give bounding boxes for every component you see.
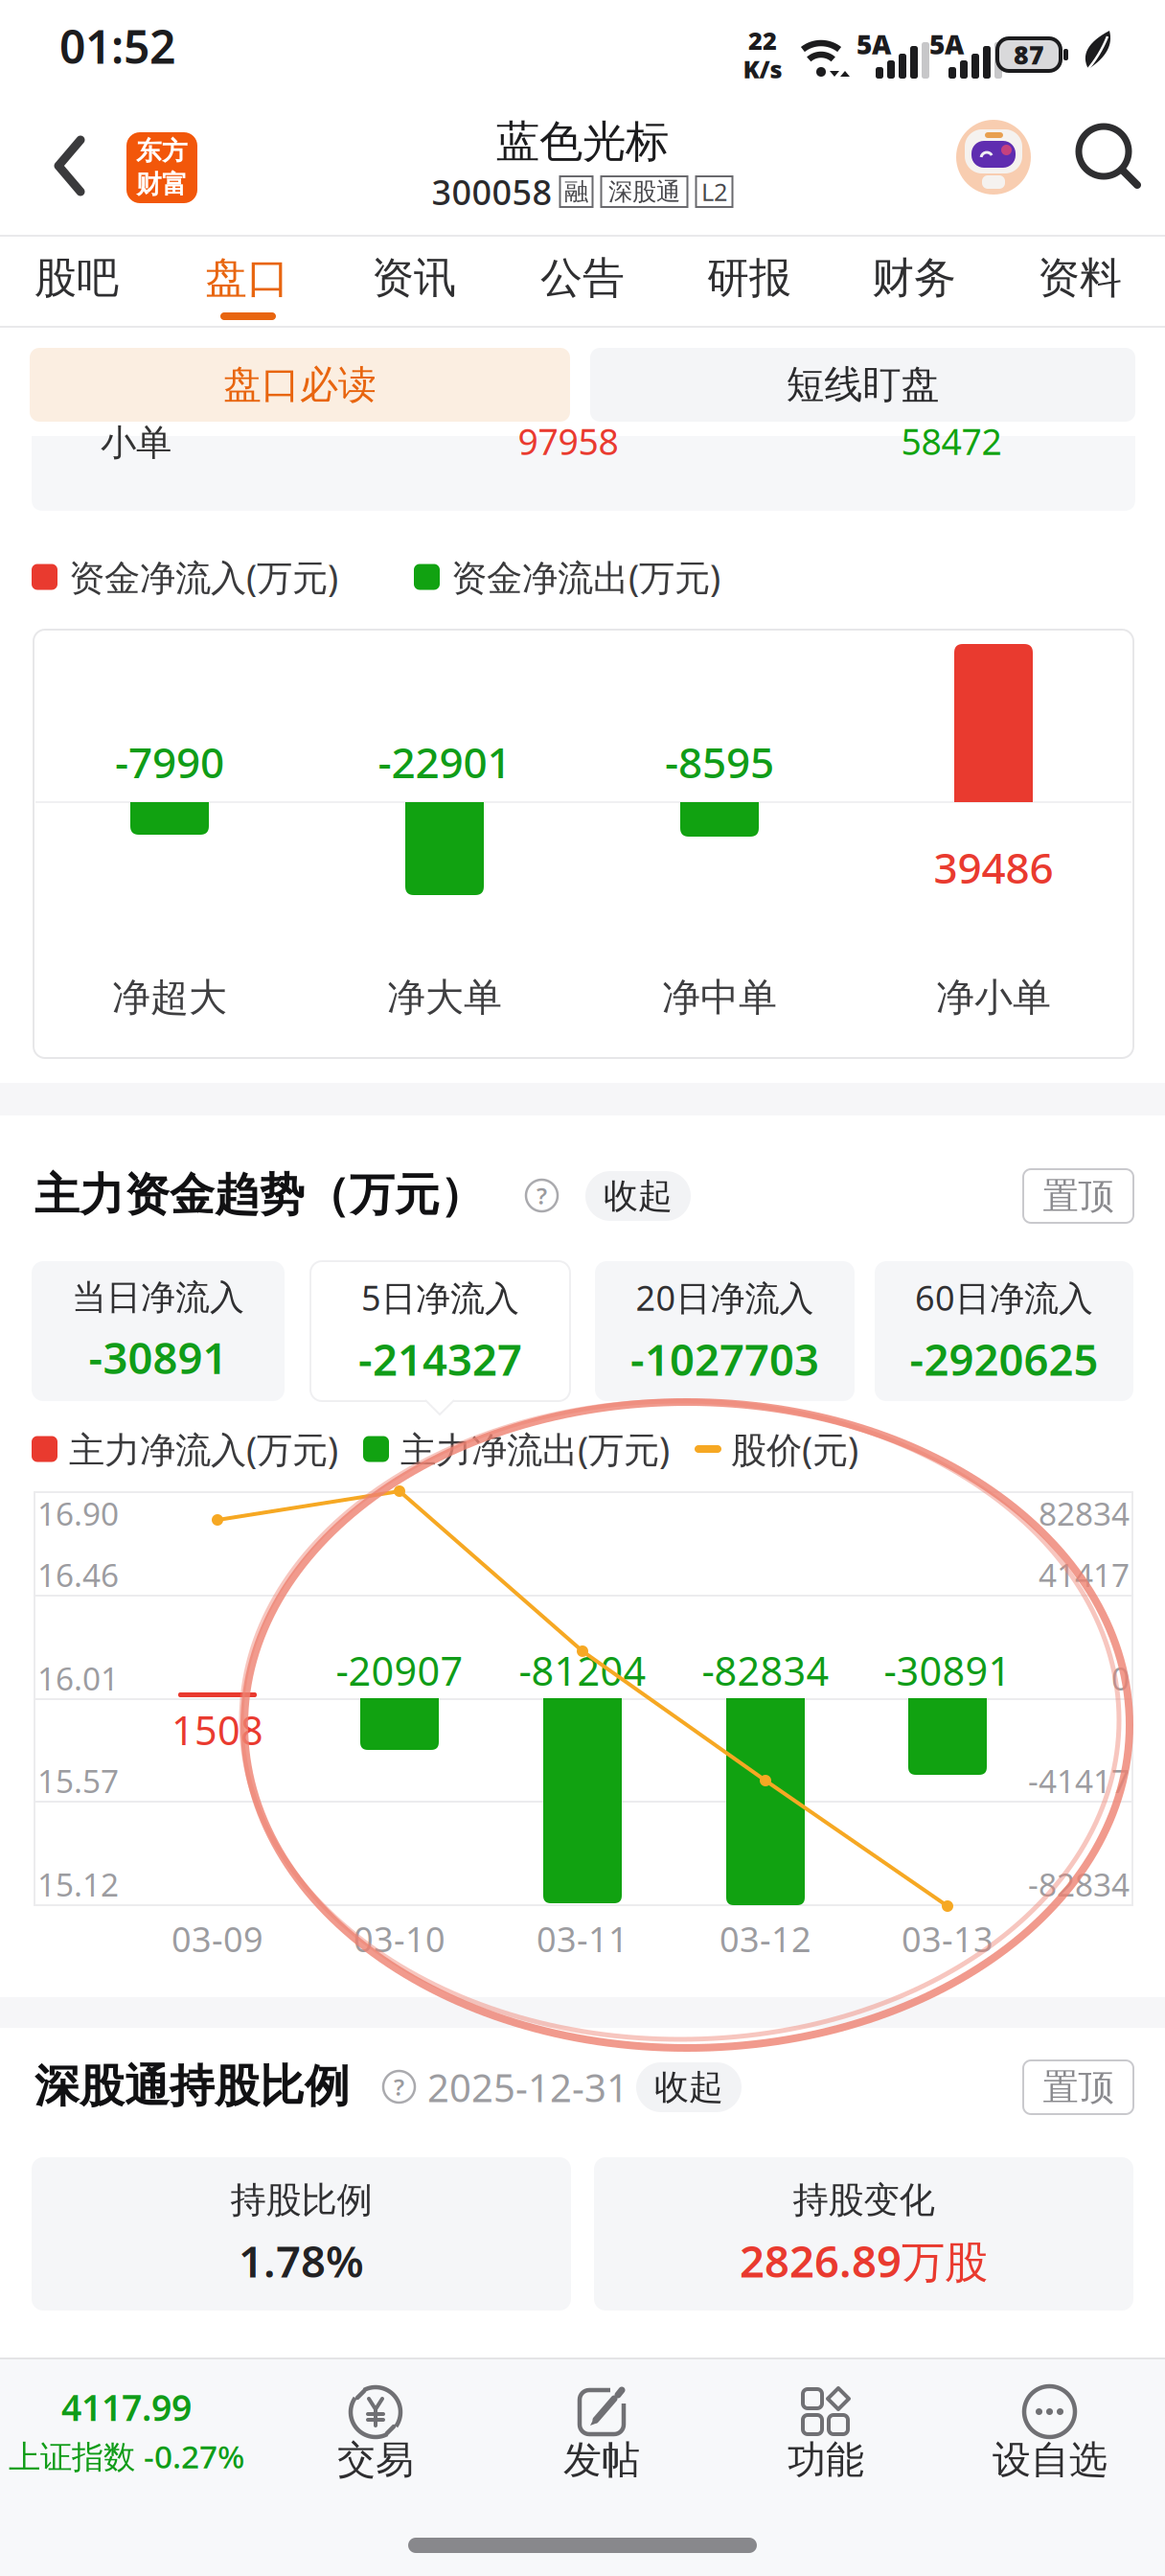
button[interactable]: 发帖 xyxy=(0,2357,1165,2576)
button[interactable]: 设自选 xyxy=(0,2357,1165,2576)
button[interactable]: 公告 xyxy=(0,235,1165,328)
staticText: -82834 xyxy=(702,1644,829,1697)
staticText: 净超大 xyxy=(112,974,227,1021)
staticText: 盘口必读 xyxy=(223,361,377,408)
staticText: 深股通持股比例 xyxy=(34,2059,350,2114)
button[interactable]: 持股比例 xyxy=(0,0,1165,2576)
staticText: 研报 xyxy=(707,252,791,304)
button[interactable]: 盘口必读 xyxy=(0,0,1165,2576)
staticText: 当日净流入 xyxy=(72,1276,244,1319)
button[interactable]: 盘口 xyxy=(0,235,1165,328)
button[interactable]: 财务 xyxy=(0,235,1165,328)
staticText: 股吧 xyxy=(34,252,119,304)
staticText: -7990 xyxy=(115,734,224,790)
staticText: 上证指数 -0.27% xyxy=(9,2435,244,2477)
staticText: -81204 xyxy=(519,1644,646,1697)
staticText: 东方 xyxy=(136,135,188,167)
staticText: 39486 xyxy=(934,839,1053,895)
staticText: 蓝色光标 xyxy=(496,115,669,169)
button[interactable]: 帮助 xyxy=(0,2058,1165,2114)
button[interactable]: Search xyxy=(0,105,1165,220)
staticText: 16.46 xyxy=(37,1553,119,1596)
staticText: 主力资金趋势（万元） xyxy=(34,1168,485,1222)
button[interactable]: 5日净流入 xyxy=(0,1261,1165,1416)
staticText: 置顶 xyxy=(1043,1174,1114,1218)
staticText: 收起 xyxy=(654,2066,723,2108)
staticText: 41417 xyxy=(1039,1553,1130,1596)
staticText: 功能 xyxy=(788,2436,864,2484)
staticText: 净大单 xyxy=(387,974,502,1021)
staticText: -2920625 xyxy=(910,1330,1098,1388)
staticText: 5A xyxy=(929,26,964,62)
button[interactable]: 收起 xyxy=(0,2058,1165,2114)
staticText: 22 xyxy=(748,24,777,57)
staticText: 5A xyxy=(857,26,891,62)
staticText: 5日净流入 xyxy=(361,1275,519,1320)
staticText: L2 xyxy=(701,176,727,208)
staticText: ? xyxy=(537,1180,547,1211)
staticText: K/s xyxy=(743,53,782,85)
staticText: 2826.89万股 xyxy=(740,2232,988,2289)
staticText: 资金净流入(万元) xyxy=(69,553,338,601)
staticText: 设自选 xyxy=(993,2436,1108,2484)
button[interactable]: 短线盯盘 xyxy=(0,0,1165,2576)
button[interactable]: 当日净流入 xyxy=(0,1261,1165,1416)
staticText: 16.90 xyxy=(37,1492,119,1534)
button[interactable]: 交易 xyxy=(0,2357,1165,2576)
staticText: 1508 xyxy=(171,1704,263,1756)
staticText: 发帖 xyxy=(563,2436,640,2484)
staticText: 持股比例 xyxy=(230,2178,372,2222)
staticText: -22901 xyxy=(378,734,511,790)
staticText: -82834 xyxy=(1028,1863,1130,1905)
button[interactable]: 功能 xyxy=(0,2357,1165,2576)
staticText: 小单 xyxy=(101,421,171,465)
staticText: 15.57 xyxy=(37,1759,119,1802)
staticText: 主力净流入(万元) xyxy=(69,1425,338,1473)
staticText: 15.12 xyxy=(37,1863,119,1905)
staticText: 收起 xyxy=(604,1175,673,1217)
staticText: 97958 xyxy=(518,417,618,465)
button[interactable]: 4117.99 xyxy=(0,2357,1165,2576)
button[interactable]: 资料 xyxy=(0,235,1165,328)
staticText: 财富 xyxy=(136,169,188,200)
staticText: -8595 xyxy=(665,734,774,790)
button[interactable]: Assistant xyxy=(0,105,1165,220)
staticText: 公告 xyxy=(540,252,625,304)
staticText: 融 xyxy=(564,177,588,207)
button[interactable]: 置顶 xyxy=(0,2058,1165,2114)
button[interactable]: Back xyxy=(0,105,1165,220)
staticText: -30891 xyxy=(884,1644,1011,1697)
staticText: 净中单 xyxy=(662,974,777,1021)
button[interactable]: 60日净流入 xyxy=(0,1261,1165,1416)
staticText: 58472 xyxy=(901,417,1002,465)
button[interactable]: 帮助 xyxy=(0,1167,1165,1223)
button[interactable]: 资讯 xyxy=(0,235,1165,328)
staticText: 87 xyxy=(1014,38,1044,72)
button[interactable]: 股吧 xyxy=(0,235,1165,328)
staticText: 2025-12-31 xyxy=(427,2062,628,2113)
staticText: 交易 xyxy=(337,2436,414,2484)
staticText: 20日净流入 xyxy=(636,1275,814,1320)
staticText: 03-09 xyxy=(171,1916,263,1962)
button[interactable]: 收起 xyxy=(0,1167,1165,1223)
staticText: 主力净流出(万元) xyxy=(400,1425,670,1473)
staticText: 净小单 xyxy=(936,974,1051,1021)
staticText: 资讯 xyxy=(372,252,456,304)
staticText: -30891 xyxy=(89,1328,228,1386)
staticText: 盘口 xyxy=(205,252,289,304)
staticText: 深股通 xyxy=(608,177,680,207)
staticText: 持股变化 xyxy=(793,2178,935,2222)
staticText: -1027703 xyxy=(630,1330,819,1388)
staticText: 0 xyxy=(1111,1657,1130,1699)
staticText: 短线盯盘 xyxy=(786,361,939,408)
staticText: 财务 xyxy=(872,252,956,304)
staticText: 资金净流出(万元) xyxy=(451,553,720,601)
button[interactable]: 20日净流入 xyxy=(0,1261,1165,1416)
staticText: 03-12 xyxy=(720,1916,811,1962)
staticText: -41417 xyxy=(1028,1759,1130,1802)
button[interactable]: 置顶 xyxy=(0,1167,1165,1223)
button[interactable]: 研报 xyxy=(0,235,1165,328)
staticText: 60日净流入 xyxy=(915,1275,1093,1320)
staticText: 置顶 xyxy=(1043,2065,1114,2109)
button[interactable]: 持股变化 xyxy=(0,0,1165,2576)
